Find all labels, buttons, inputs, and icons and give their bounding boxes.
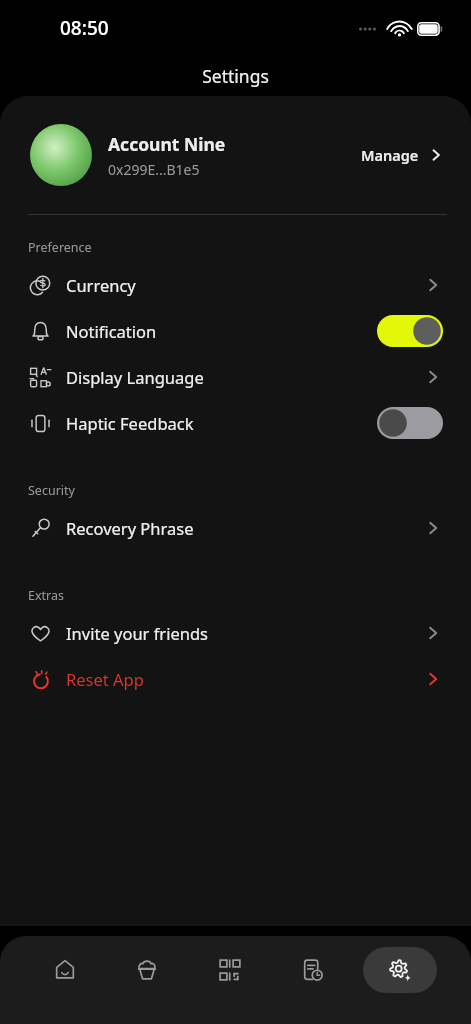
staticText: Settings [202,64,269,88]
button[interactable]: History [281,947,343,993]
staticText: Invite your friends [66,622,423,644]
button[interactable]: Account Nine [0,96,471,214]
staticText: Reset App [66,668,423,690]
staticText: Extras [28,587,64,604]
staticText: Display Language [66,366,423,388]
staticText: Manage [361,145,419,165]
staticText: Currency [66,274,423,296]
staticText: Preference [28,239,92,256]
button[interactable]: Recovery Phrase [0,505,471,551]
staticText: 08:50 [60,15,109,41]
button[interactable]: Scan QR code [199,947,261,993]
staticText: Notification [66,320,377,342]
button[interactable]: Settings [363,947,437,993]
button[interactable]: Haptic feedback toggle, off [377,407,443,439]
button[interactable]: Notification [0,308,471,354]
button[interactable]: Haptic Feedback [0,400,471,446]
staticText: Account Nine [108,132,226,156]
staticText: Security [28,482,75,499]
button[interactable]: Display Language [0,354,471,400]
button[interactable]: Rewards [116,947,178,993]
button[interactable]: Notification toggle, on [377,315,443,347]
button[interactable]: Reset App [0,656,471,702]
staticText: 0x299E...B1e5 [108,160,200,179]
staticText: Recovery Phrase [66,517,423,539]
button[interactable]: Currency [0,262,471,308]
button[interactable]: Invite your friends [0,610,471,656]
staticText: Haptic Feedback [66,412,377,434]
button[interactable]: Manage [355,145,445,165]
button[interactable]: Home [34,947,96,993]
